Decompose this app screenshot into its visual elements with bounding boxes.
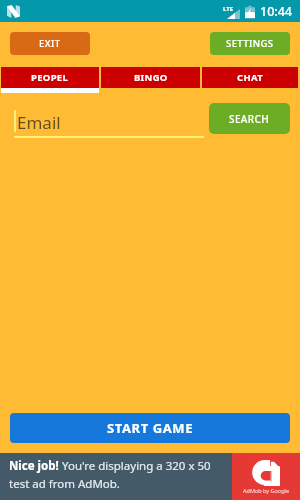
button[interactable]: PEOPEL	[1, 67, 99, 93]
staticText: EXIT	[39, 37, 61, 50]
staticText: START GAME	[107, 419, 194, 437]
staticText: Email	[17, 111, 61, 134]
button[interactable]: CHAT	[202, 67, 298, 93]
staticText: SEARCH	[229, 112, 270, 126]
staticText: AdMob by Google	[243, 487, 290, 494]
button[interactable]: START GAME	[10, 413, 290, 443]
staticText: Nice job!	[9, 458, 59, 474]
staticText: BINGO	[134, 71, 168, 84]
staticText: You're displaying a 320 x 50	[59, 458, 211, 474]
staticText: PEOPEL	[31, 71, 69, 84]
staticText: 10:44	[260, 3, 293, 20]
staticText: test ad from AdMob.	[9, 476, 120, 492]
staticText: SETTINGS	[226, 37, 274, 50]
staticText: LTE	[223, 5, 234, 13]
button[interactable]: SEARCH	[209, 103, 290, 134]
button[interactable]: SETTINGS	[210, 32, 290, 55]
button[interactable]: EXIT	[10, 32, 90, 55]
button[interactable]: BINGO	[101, 67, 200, 93]
staticText: CHAT	[237, 71, 263, 84]
